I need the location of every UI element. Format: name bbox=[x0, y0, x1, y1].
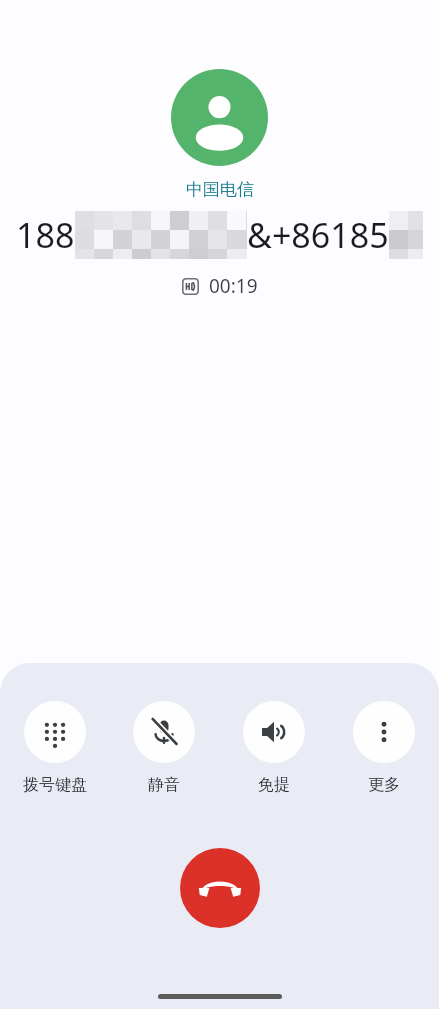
staticText: 拨号键盘 bbox=[23, 775, 87, 795]
staticText: 中国电信 bbox=[186, 179, 254, 200]
staticText: &+86185 bbox=[247, 212, 389, 258]
staticText: 免提 bbox=[258, 775, 290, 795]
button[interactable]: Dialpad bbox=[0, 701, 109, 795]
staticText: 00:19 bbox=[209, 273, 258, 299]
button[interactable]: End call bbox=[180, 848, 260, 928]
button[interactable]: More bbox=[329, 701, 439, 795]
button[interactable]: Speaker bbox=[219, 701, 329, 795]
button[interactable]: Mute bbox=[109, 701, 219, 795]
staticText: 188 bbox=[16, 212, 75, 258]
staticText: 静音 bbox=[148, 775, 180, 795]
staticText: 更多 bbox=[368, 775, 400, 795]
